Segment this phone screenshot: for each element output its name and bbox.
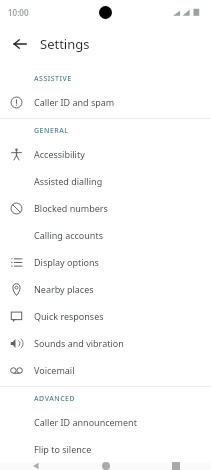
button[interactable]: Nearby places xyxy=(0,275,211,302)
button[interactable]: Assisted dialling xyxy=(0,167,211,194)
staticText: Calling accounts xyxy=(34,229,103,241)
staticText: ADVANCED xyxy=(34,394,76,404)
staticText: Flip to silence xyxy=(34,443,92,455)
button[interactable]: Blocked numbers xyxy=(0,194,211,221)
button[interactable]: Voicemail xyxy=(0,356,211,383)
staticText: Sounds and vibration xyxy=(34,337,124,349)
staticText: Assisted dialling xyxy=(34,175,103,187)
staticText: Nearby places xyxy=(34,283,94,295)
staticText: Display options xyxy=(34,256,99,268)
button[interactable]: Recents xyxy=(141,462,211,470)
staticText: Accessibility xyxy=(34,148,85,160)
staticText: 10:00 xyxy=(8,7,29,18)
staticText: Quick responses xyxy=(34,310,104,322)
button[interactable]: Caller ID and spam xyxy=(0,88,211,115)
staticText: Blocked numbers xyxy=(34,202,108,214)
button[interactable]: Flip to silence xyxy=(0,435,211,462)
button[interactable]: Home xyxy=(71,462,141,470)
button[interactable]: Accessibility xyxy=(0,140,211,167)
button[interactable]: Back xyxy=(6,30,34,58)
staticText: Caller ID announcement xyxy=(34,416,137,428)
button[interactable]: Calling accounts xyxy=(0,221,211,248)
button[interactable]: Display options xyxy=(0,248,211,275)
staticText: Caller ID and spam xyxy=(34,96,115,108)
button[interactable]: Sounds and vibration xyxy=(0,329,211,356)
staticText: Voicemail xyxy=(34,364,75,376)
button[interactable]: Back xyxy=(0,462,71,470)
staticText: Settings xyxy=(40,35,90,53)
staticText: GENERAL xyxy=(34,126,69,136)
button[interactable]: Quick responses xyxy=(0,302,211,329)
staticText: ASSISTIVE xyxy=(34,74,72,84)
button[interactable]: Caller ID announcement xyxy=(0,408,211,435)
